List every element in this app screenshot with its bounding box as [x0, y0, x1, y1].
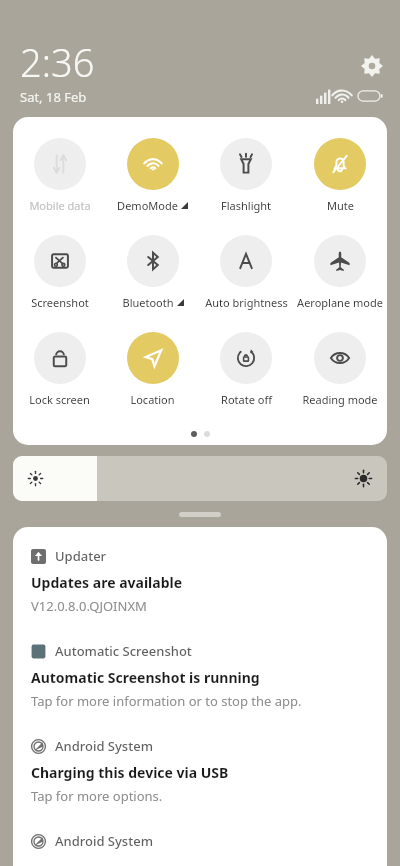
button[interactable]: Aeroplane mode: [293, 235, 387, 310]
button[interactable]: Android System: [13, 710, 387, 805]
button[interactable]: Bluetooth: [106, 235, 199, 310]
staticText: Mobile data: [29, 198, 91, 213]
staticText: DemoMode: [117, 198, 178, 213]
staticText: Android System: [55, 832, 153, 850]
staticText: Automatic Screenshot is running: [31, 668, 260, 687]
staticText: Sat, 18 Feb: [20, 88, 87, 106]
staticText: Automatic Screenshot: [55, 642, 192, 660]
staticText: V12.0.8.0.QJOINXM: [31, 597, 147, 615]
staticText: Aeroplane mode: [297, 295, 383, 310]
button[interactable]: DemoMode: [106, 138, 199, 213]
staticText: Reading mode: [302, 392, 378, 407]
button[interactable]: Flashlight: [199, 138, 293, 213]
button[interactable]: Brightness: [13, 456, 387, 501]
button[interactable]: Auto brightness: [199, 235, 293, 310]
button[interactable]: Location: [106, 332, 199, 407]
staticText: Screenshot: [31, 295, 89, 310]
button[interactable]: Reading mode: [293, 332, 387, 407]
staticText: Updater: [55, 547, 107, 565]
button[interactable]: Updater: [13, 527, 387, 615]
staticText: Bluetooth: [122, 295, 174, 310]
button[interactable]: Screenshot: [13, 235, 106, 310]
staticText: Lock screen: [29, 392, 90, 407]
button[interactable]: Lock screen: [13, 332, 106, 407]
staticText: Location: [130, 392, 175, 407]
staticText: Tap for more options.: [31, 787, 163, 805]
button[interactable]: Android System: [13, 805, 387, 850]
staticText: Auto brightness: [205, 295, 288, 310]
button[interactable]: Mobile data: [13, 138, 106, 213]
staticText: 2:36: [20, 36, 95, 88]
button[interactable]: Mute: [293, 138, 387, 213]
staticText: Rotate off: [221, 392, 272, 407]
staticText: Charging this device via USB: [31, 763, 229, 782]
staticText: Mute: [327, 198, 354, 213]
button[interactable]: Automatic Screenshot: [13, 615, 387, 710]
staticText: Android System: [55, 737, 153, 755]
staticText: Tap for more information or to stop the …: [31, 692, 302, 710]
button[interactable]: Rotate off: [199, 332, 293, 407]
staticText: Flashlight: [221, 198, 271, 213]
staticText: Updates are available: [31, 573, 183, 592]
button[interactable]: Settings: [356, 50, 388, 82]
